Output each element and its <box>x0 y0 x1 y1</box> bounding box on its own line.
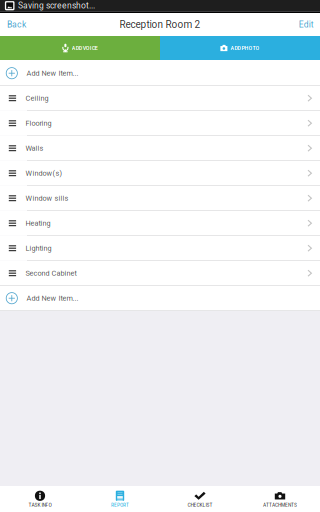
staticText: Ceiling <box>26 94 49 102</box>
staticText: Heating <box>26 219 51 227</box>
button[interactable]: CHECKLIST <box>160 486 240 512</box>
button[interactable]: REPORT <box>80 486 160 512</box>
staticText: Add New Item... <box>27 69 79 77</box>
button[interactable]: ATTACHMENTS <box>240 486 320 512</box>
staticText: Window sills <box>26 194 69 202</box>
staticText: ATTACHMENTS <box>263 501 297 508</box>
staticText: ADD PHOTO <box>231 44 260 52</box>
staticText: Reception Room 2 <box>119 19 200 30</box>
button[interactable]: Add New Item... <box>0 61 320 86</box>
button[interactable]: Window sills <box>0 186 320 211</box>
staticText: Flooring <box>26 119 52 127</box>
staticText: Window(s) <box>26 169 63 177</box>
staticText: Add New Item... <box>27 294 79 302</box>
staticText: Walls <box>26 144 44 152</box>
button[interactable]: Lighting <box>0 236 320 261</box>
button[interactable]: TASK INFO <box>0 486 80 512</box>
staticText: ADD VOICE <box>72 44 98 52</box>
staticText: Second Cabinet <box>26 269 77 277</box>
staticText: Saving screenshot... <box>18 1 95 11</box>
button[interactable]: Window(s) <box>0 161 320 186</box>
button[interactable]: Walls <box>0 136 320 161</box>
button[interactable]: ADD PHOTO <box>160 36 320 60</box>
button[interactable]: Ceiling <box>0 86 320 111</box>
button[interactable]: Back <box>0 13 32 36</box>
button[interactable]: Add New Item... <box>0 286 320 311</box>
button[interactable]: Second Cabinet <box>0 261 320 286</box>
staticText: Lighting <box>26 244 52 252</box>
staticText: Back <box>7 19 26 30</box>
button[interactable]: Heating <box>0 211 320 236</box>
button[interactable]: Edit <box>293 13 320 36</box>
staticText: TASK INFO <box>28 501 51 508</box>
staticText: Edit <box>299 19 314 30</box>
staticText: CHECKLIST <box>187 501 212 508</box>
staticText: REPORT <box>111 501 129 508</box>
button[interactable]: ADD VOICE <box>0 36 160 60</box>
button[interactable]: Flooring <box>0 111 320 136</box>
